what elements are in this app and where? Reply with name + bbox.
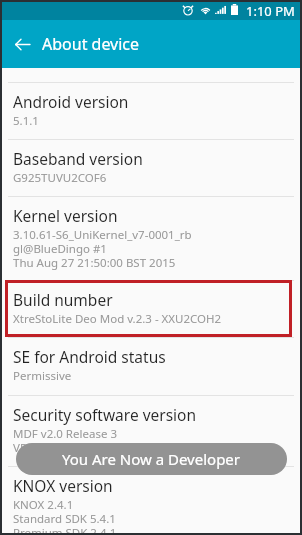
staticText: KNOX 2.4.1 xyxy=(13,497,74,513)
staticText: SE for Android status xyxy=(13,346,166,367)
staticText: G925TUVU2COF6 xyxy=(13,170,107,186)
button[interactable]: Security software version xyxy=(0,395,302,466)
button[interactable]: SE for Android status xyxy=(0,337,302,395)
button[interactable]: Android version xyxy=(0,82,302,139)
button[interactable]: Navigate up xyxy=(0,20,40,68)
staticText: Security software version xyxy=(13,404,197,425)
staticText: Thu Aug 27 21:50:00 BST 2015 xyxy=(13,255,176,271)
button[interactable]: Baseband version xyxy=(0,139,302,196)
button[interactable]: KNOX version xyxy=(0,466,302,535)
staticText: XtreStoLite Deo Mod v.2.3 - XXU2COH2 xyxy=(13,311,222,327)
staticText: Standard SDK 5.4.1 xyxy=(13,511,116,527)
staticText: 3.10.61-S6_UniKernel_v7-0001_rb xyxy=(13,227,192,243)
staticText: Permissive xyxy=(13,368,72,384)
staticText: Baseband version xyxy=(13,148,143,169)
staticText: 1:10 PM xyxy=(246,2,295,20)
staticText: You Are Now a Developer xyxy=(62,449,241,469)
staticText: Android version xyxy=(13,91,129,112)
staticText: MDF v2.0 Release 3 xyxy=(13,426,117,442)
staticText: Build number xyxy=(13,289,113,310)
staticText: About device xyxy=(42,33,140,55)
staticText: VPN v1.4 Release 5.2 xyxy=(13,440,125,456)
button[interactable]: Build number xyxy=(0,280,302,337)
staticText: Premium SDK 2.4.1 xyxy=(13,525,117,535)
button[interactable]: Kernel version xyxy=(0,196,302,280)
staticText: KNOX version xyxy=(13,475,113,496)
staticText: Kernel version xyxy=(13,205,118,226)
staticText: 5.1.1 xyxy=(13,113,39,129)
staticText: gl@BlueDingo #1 xyxy=(13,241,107,257)
